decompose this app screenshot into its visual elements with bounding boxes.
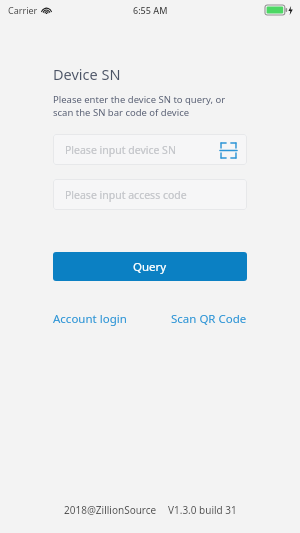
button[interactable]: Scan barcode: [217, 139, 239, 161]
staticText: Please enter the device SN to query, or …: [53, 93, 247, 119]
button[interactable]: Account login: [53, 311, 127, 327]
staticText: 2018@ZillionSource: [64, 503, 157, 517]
button[interactable]: Scan QR Code: [171, 311, 247, 327]
button[interactable]: Query: [53, 252, 247, 281]
button[interactable]: Please input device SN: [53, 134, 247, 165]
staticText: Account login: [53, 311, 127, 327]
staticText: 6:55 AM: [133, 4, 168, 16]
staticText: Scan QR Code: [171, 311, 247, 327]
staticText: Query: [133, 259, 167, 275]
staticText: Device SN: [53, 64, 121, 84]
staticText: Carrier: [8, 4, 38, 16]
staticText: Please input access code: [65, 188, 187, 202]
staticText: Please input device SN: [65, 143, 176, 157]
button[interactable]: Please input access code: [53, 179, 247, 210]
staticText: V1.3.0 build 31: [168, 503, 237, 517]
